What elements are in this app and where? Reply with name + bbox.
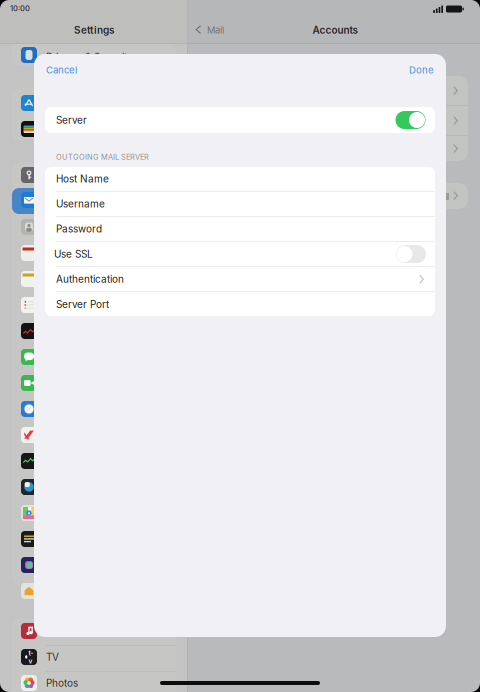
- staticText: Authentication: [56, 273, 124, 285]
- staticText: Username: [56, 198, 105, 210]
- button[interactable]: Use SSL: [45, 242, 435, 266]
- button[interactable]: Host Name: [45, 167, 435, 191]
- staticText: Use SSL: [54, 248, 93, 260]
- staticText: TV: [46, 651, 59, 663]
- staticText: Cancel: [46, 64, 77, 76]
- button[interactable]: Authentication: [45, 267, 435, 291]
- staticText: tv: [29, 649, 34, 665]
- staticText: Host Name: [56, 173, 109, 185]
- staticText: Done: [409, 64, 434, 76]
- staticText: Server Port: [56, 298, 109, 310]
- staticText: 10:00: [10, 4, 30, 13]
- staticText: Settings: [74, 24, 114, 36]
- button[interactable]: Username: [45, 192, 435, 216]
- staticText: Photos: [46, 677, 78, 689]
- button[interactable]: Password: [45, 217, 435, 241]
- button[interactable]: Server: [45, 107, 435, 133]
- staticText: Accounts: [312, 24, 357, 36]
- staticText: OUTGOING MAIL SERVER: [56, 152, 149, 161]
- button[interactable]: Server Port: [45, 292, 435, 316]
- staticText: Server: [56, 114, 87, 126]
- staticText: Password: [56, 223, 102, 235]
- staticText: Privacy & Security: [46, 51, 133, 63]
- button[interactable]: Done: [354, 63, 434, 77]
- staticText: Mail: [207, 24, 224, 36]
- button[interactable]: Cancel: [46, 63, 126, 77]
